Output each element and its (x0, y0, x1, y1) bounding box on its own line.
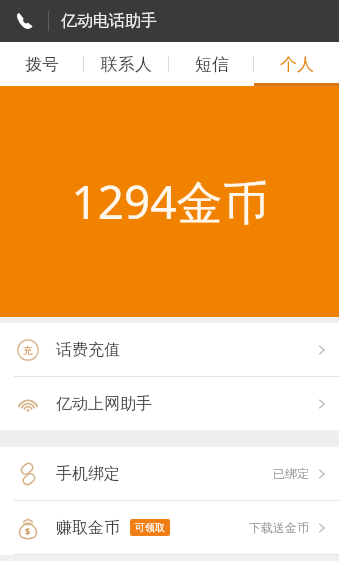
button[interactable]: Dialer (12, 8, 38, 34)
staticText: $ (25, 525, 31, 537)
staticText: 短信 (195, 54, 229, 75)
button[interactable]: 手机绑定 (0, 447, 339, 500)
staticText: 1294金币 (71, 170, 269, 233)
staticText: 充 (23, 344, 33, 357)
staticText: 下载送金币 (249, 520, 309, 535)
staticText: 个人 (280, 54, 314, 75)
button[interactable]: 亿动上网助手 (0, 377, 339, 430)
button[interactable]: $ (0, 501, 339, 554)
staticText: 联系人 (101, 54, 152, 75)
staticText: 手机绑定 (56, 464, 120, 484)
staticText: 可领取 (135, 521, 165, 534)
staticText: 话费充值 (56, 340, 120, 360)
staticText: 亿动上网助手 (56, 394, 152, 414)
staticText: 拨号 (25, 54, 59, 75)
button[interactable]: 联系人 (84, 42, 169, 86)
staticText: 亿动电话助手 (61, 11, 157, 31)
button[interactable]: 拨号 (0, 42, 84, 86)
button[interactable]: 个人 (254, 42, 339, 86)
button[interactable]: 充 (0, 323, 339, 376)
button[interactable]: 短信 (169, 42, 254, 86)
staticText: 已绑定 (273, 466, 309, 481)
staticText: 赚取金币 (56, 518, 120, 538)
